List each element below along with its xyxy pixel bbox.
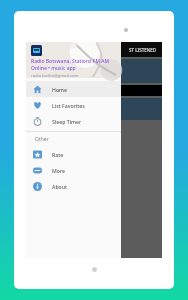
other: Home — [33, 85, 42, 94]
staticText: Sleep Timer — [52, 118, 82, 125]
staticText: Online • music app — [31, 65, 76, 72]
other: Rate — [33, 150, 42, 159]
staticText: Home — [52, 86, 67, 93]
button[interactable] — [26, 59, 162, 83]
staticText: ST LISTENED — [129, 47, 156, 53]
other: More — [33, 166, 42, 175]
staticText: Rate — [52, 151, 64, 158]
other: About — [33, 182, 42, 191]
button[interactable]: Sleep Timer — [26, 113, 121, 129]
button[interactable]: More — [26, 162, 121, 178]
button[interactable]: Radio Botswana, Stations FM AM — [26, 42, 121, 78]
staticText: List Favorites — [52, 102, 85, 109]
button[interactable]: About — [26, 178, 121, 194]
staticText: Other — [35, 136, 49, 143]
other: List Favorites — [33, 101, 42, 110]
staticText: radio.botho@gmail.com — [31, 73, 79, 78]
staticText: About — [52, 183, 68, 190]
staticText: More — [52, 167, 65, 174]
button[interactable]: List Favorites — [26, 97, 121, 113]
button[interactable] — [26, 98, 162, 120]
button[interactable]: ST LISTENED — [129, 47, 156, 53]
other: Sleep Timer — [33, 117, 42, 126]
button[interactable]: Rate — [26, 146, 121, 162]
staticText: Radio Botswana, Stations FM AM — [31, 58, 110, 65]
button[interactable] — [26, 85, 162, 96]
button[interactable]: Home — [26, 81, 121, 97]
